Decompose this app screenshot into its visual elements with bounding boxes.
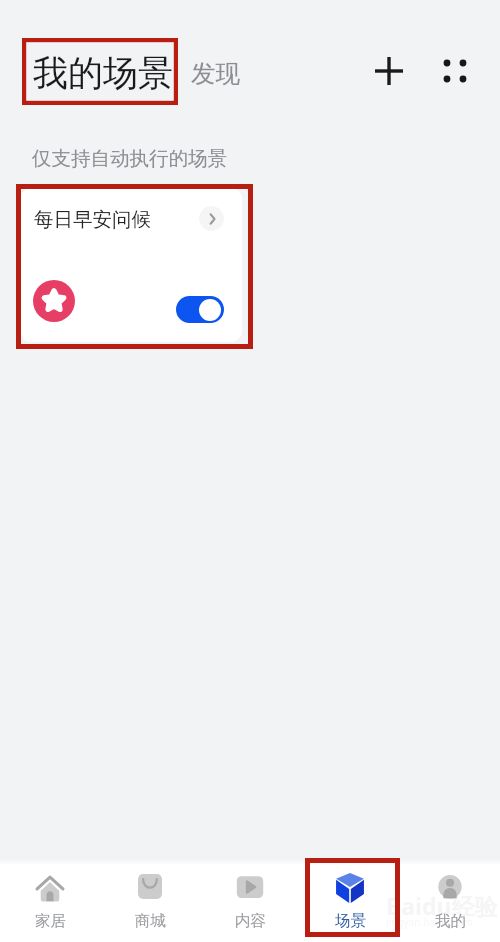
staticText: 每日早安问候: [34, 207, 151, 232]
staticText: Baidu经验: [386, 890, 498, 921]
button[interactable]: Scene details: [199, 206, 224, 231]
staticText: 内容: [235, 911, 266, 931]
button[interactable]: 商城: [100, 860, 200, 942]
button[interactable]: 内容: [200, 860, 300, 942]
staticText: jingyan.baidu.com: [386, 915, 473, 929]
button[interactable]: Enable scene: [176, 296, 224, 323]
staticText: 我的: [435, 911, 466, 931]
button[interactable]: 发现: [191, 58, 240, 89]
button[interactable]: Add scene: [367, 49, 411, 93]
staticText: 场景: [335, 911, 366, 931]
staticText: 发现: [191, 58, 240, 89]
staticText: 我的场景: [33, 51, 173, 95]
staticText: 家居: [35, 911, 66, 931]
button[interactable]: 场景: [300, 860, 400, 942]
button[interactable]: 每日早安问候: [20, 188, 242, 342]
button[interactable]: More options: [433, 49, 477, 93]
staticText: 商城: [135, 911, 166, 931]
button[interactable]: 家居: [0, 860, 100, 942]
button[interactable]: 我的: [400, 860, 500, 942]
staticText: 仅支持自动执行的场景: [32, 146, 227, 171]
